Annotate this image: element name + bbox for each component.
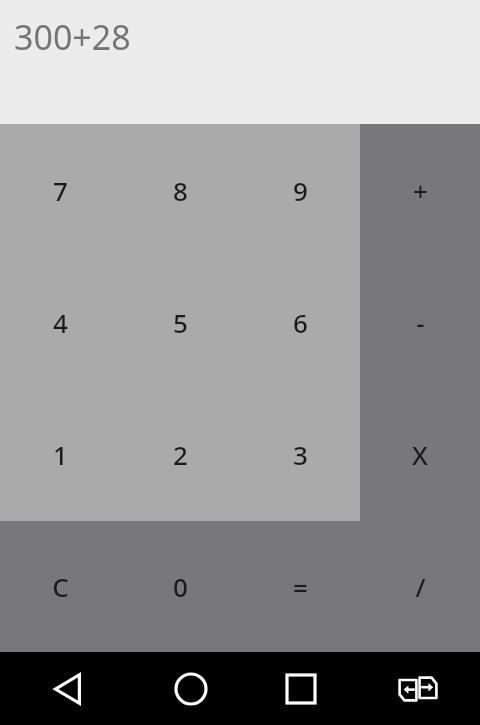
- staticText: 3: [293, 437, 308, 472]
- staticText: 0: [173, 569, 188, 604]
- button[interactable]: 7: [0, 124, 120, 256]
- staticText: +: [413, 173, 428, 208]
- staticText: 6: [293, 305, 308, 340]
- staticText: 4: [53, 305, 68, 340]
- staticText: 5: [173, 305, 188, 340]
- button[interactable]: 6: [240, 256, 360, 388]
- staticText: 9: [293, 173, 308, 208]
- button[interactable]: =: [240, 521, 360, 652]
- staticText: 2: [173, 437, 188, 472]
- staticText: 300+28: [14, 14, 131, 60]
- button[interactable]: +: [360, 124, 480, 256]
- button[interactable]: 9: [240, 124, 360, 256]
- button[interactable]: 3: [240, 388, 360, 520]
- button[interactable]: C: [0, 521, 120, 652]
- button[interactable]: /: [360, 521, 480, 652]
- staticText: 8: [173, 173, 188, 208]
- button[interactable]: 8: [120, 124, 240, 256]
- staticText: -: [416, 305, 425, 340]
- button[interactable]: Rotate screen: [356, 652, 480, 725]
- button[interactable]: Home: [136, 652, 246, 725]
- staticText: /: [415, 569, 426, 604]
- button[interactable]: 1: [0, 388, 120, 520]
- button[interactable]: 2: [120, 388, 240, 520]
- button[interactable]: 4: [0, 256, 120, 388]
- button[interactable]: Back: [0, 652, 136, 725]
- button[interactable]: X: [360, 388, 480, 520]
- button[interactable]: 5: [120, 256, 240, 388]
- staticText: X: [412, 437, 428, 472]
- staticText: C: [52, 569, 69, 604]
- button[interactable]: Recents: [246, 652, 356, 725]
- button[interactable]: 0: [120, 521, 240, 652]
- staticText: 7: [53, 173, 68, 208]
- staticText: =: [293, 569, 308, 604]
- staticText: 1: [53, 437, 68, 472]
